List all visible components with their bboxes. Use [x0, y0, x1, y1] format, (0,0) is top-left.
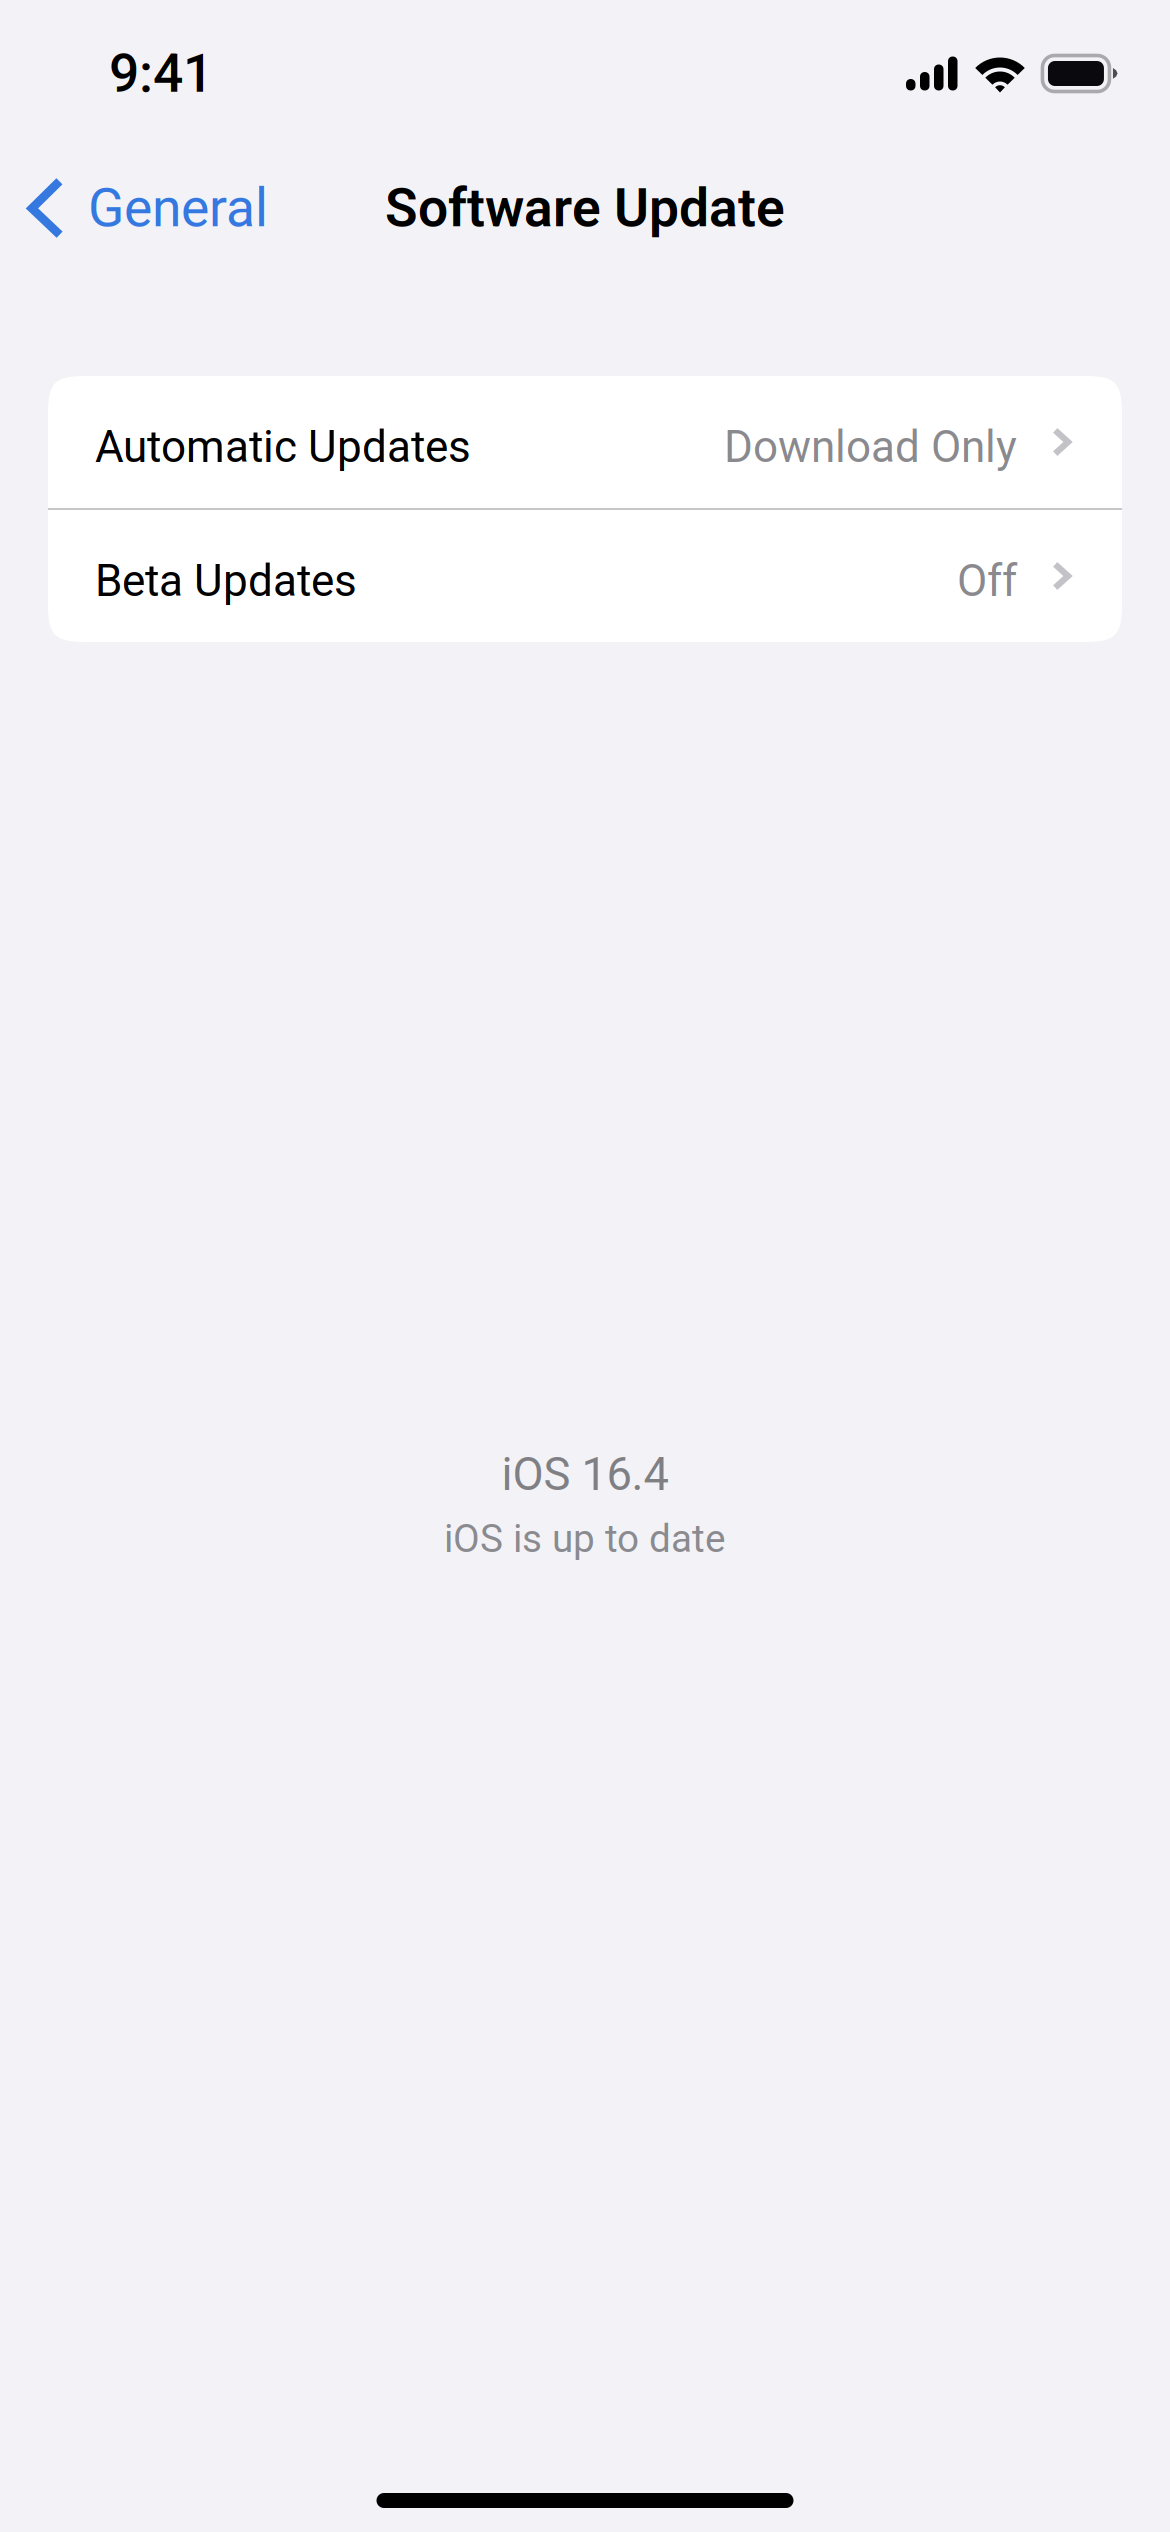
staticText: Automatic Updates	[95, 421, 471, 473]
staticText: Off	[957, 555, 1017, 607]
staticText: 9:41	[109, 42, 213, 105]
button[interactable]: Automatic Updates	[48, 376, 1122, 508]
button[interactable]: Back to General	[0, 153, 288, 263]
staticText: General	[88, 177, 268, 239]
staticText: Software Update	[385, 177, 785, 239]
staticText: Download Only	[724, 421, 1017, 473]
staticText: iOS 16.4	[501, 1448, 668, 1501]
staticText: Beta Updates	[95, 555, 357, 607]
button[interactable]: Beta Updates	[48, 510, 1122, 642]
staticText: iOS is up to date	[444, 1516, 726, 1561]
